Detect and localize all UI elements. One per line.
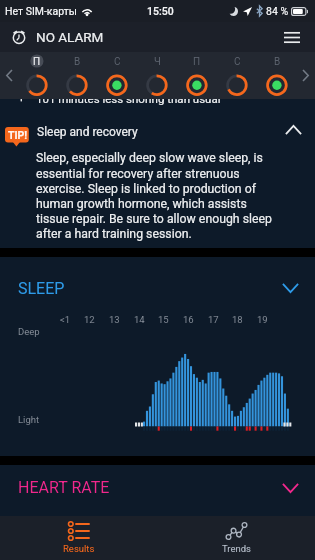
button[interactable]: Next week	[297, 52, 315, 99]
button[interactable]: Previous week	[0, 52, 18, 99]
staticText: 15	[158, 314, 169, 325]
button[interactable]: Menu	[280, 25, 304, 49]
staticText: HEART RATE	[18, 478, 110, 497]
button[interactable]	[57, 52, 97, 99]
staticText: С	[114, 56, 121, 68]
staticText: <1	[60, 314, 71, 325]
staticText: Trends	[222, 543, 251, 554]
staticText: 12	[84, 314, 95, 325]
button[interactable]: Results	[0, 516, 157, 560]
staticText: 15:50	[147, 5, 174, 17]
button[interactable]: HEART RATE	[0, 465, 315, 510]
staticText: +	[18, 91, 25, 105]
staticText: П	[33, 56, 41, 68]
button[interactable]	[97, 52, 137, 99]
staticText: Sleep and recovery	[37, 125, 138, 139]
staticText: П	[193, 56, 201, 68]
button[interactable]	[17, 52, 57, 99]
staticText: Нет SIM-карты	[5, 5, 77, 17]
staticText: 84 %	[266, 5, 289, 17]
button[interactable]: Trends	[157, 516, 315, 560]
staticText: Ч	[154, 56, 161, 68]
staticText: В	[274, 56, 281, 68]
staticText: Sleep, especially deep slow wave sleep, …	[36, 151, 281, 241]
staticText: 16	[183, 314, 194, 325]
button[interactable]	[217, 52, 257, 99]
staticText: SLEEP	[18, 279, 65, 298]
staticText: С	[234, 56, 241, 68]
staticText: 19	[257, 314, 268, 325]
staticText: 18	[232, 314, 243, 325]
button[interactable]	[257, 52, 297, 99]
staticText: NO ALARM	[36, 29, 104, 45]
staticText: 13	[109, 314, 120, 325]
staticText: Deep	[18, 326, 40, 337]
button[interactable]	[177, 52, 217, 99]
button[interactable]	[137, 52, 177, 99]
button[interactable]: SLEEP	[0, 257, 315, 307]
staticText: В	[74, 56, 81, 68]
button[interactable]: TIP!	[0, 106, 315, 147]
staticText: 101 minutes less snoring than usual	[36, 92, 221, 105]
staticText: TIP!	[8, 129, 28, 141]
staticText: Results	[63, 543, 95, 554]
staticText: 17	[208, 314, 219, 325]
staticText: 14	[134, 314, 145, 325]
staticText: Light	[18, 414, 40, 425]
